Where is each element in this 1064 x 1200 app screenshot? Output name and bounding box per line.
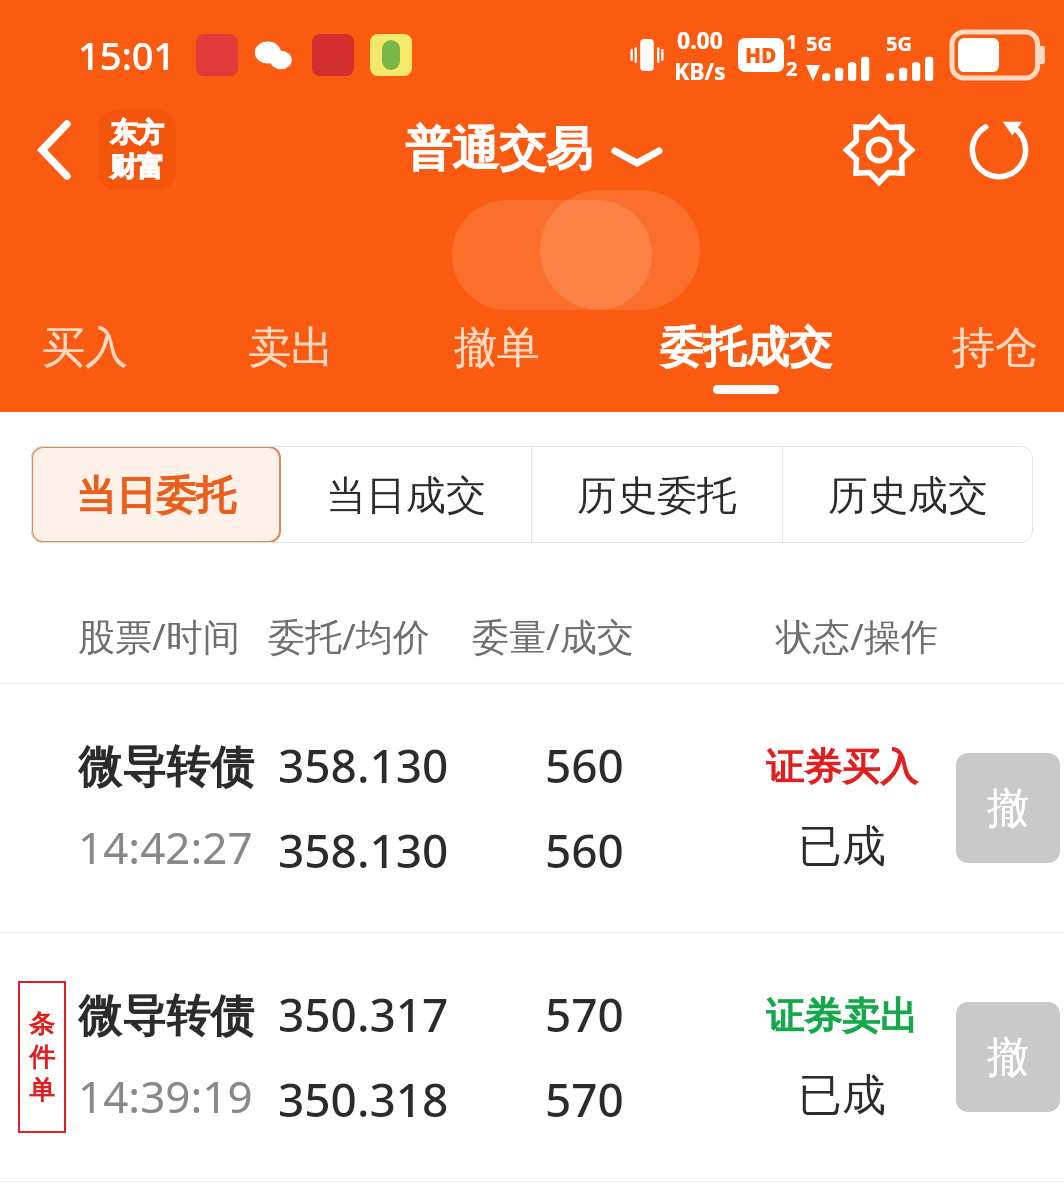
button[interactable]: 当日委托 [31,446,281,543]
staticText: 358.130 [278,819,449,882]
staticText: 已成 [798,819,886,874]
staticText: 卖出 [248,321,334,375]
button[interactable]: 历史成交 [783,446,1033,543]
button[interactable]: 历史委托 [532,446,782,543]
button[interactable]: 东方 [98,110,176,190]
button[interactable]: 持仓 [946,321,1044,394]
button[interactable]: 买入 [36,321,134,394]
staticText: 撤单 [454,321,540,375]
button[interactable]: 撤 [956,1002,1060,1112]
staticText: 微导转债 [78,989,254,1044]
staticText: 件 [29,1041,55,1074]
staticText: 条 [29,1008,55,1041]
staticText: 当日成交 [326,470,486,520]
staticText: 已成 [798,1068,886,1123]
staticText: 状态/操作 [776,610,938,661]
button[interactable]: 条 [0,933,1064,1181]
staticText: 2 [786,55,798,82]
staticText: 普通交易 [405,120,593,179]
button[interactable]: Settings [836,110,922,190]
staticText: 0.00 [677,24,723,55]
staticText: 570 [545,1068,624,1131]
staticText: 历史委托 [577,470,737,520]
staticText: 东方 [110,116,164,150]
staticText: 证券卖出 [766,992,918,1040]
staticText: 委托/均价 [268,610,430,661]
button[interactable]: 撤单 [448,321,546,394]
staticText: 微导转债 [78,740,254,795]
staticText: HD [745,41,777,70]
staticText: 财富 [110,150,164,184]
staticText: 350.317 [278,983,449,1046]
staticText: 14:39:19 [78,1066,253,1126]
button[interactable]: 当日成交 [281,446,531,543]
staticText: 买入 [42,321,128,375]
button[interactable]: 普通交易 [405,120,659,179]
staticText: 撤 [987,782,1029,835]
staticText: 单 [29,1074,55,1107]
staticText: 560 [545,819,624,882]
staticText: KB/s [674,55,726,86]
staticText: 570 [545,983,624,1046]
button[interactable]: Refresh [956,110,1042,190]
button[interactable]: 卖出 [242,321,340,394]
staticText: 560 [545,734,624,797]
staticText: 历史成交 [828,470,988,520]
button[interactable]: 微导转债 [0,684,1064,932]
staticText: 350.318 [278,1068,449,1131]
staticText: 持仓 [952,321,1038,375]
button[interactable]: Back [20,115,90,185]
staticText: 证券买入 [766,743,918,791]
staticText: 委量/成交 [472,610,634,661]
staticText: 股票/时间 [78,610,240,661]
staticText: 5G [886,30,912,57]
button[interactable]: 委托成交 [654,321,838,394]
staticText: 5G [806,30,832,57]
staticText: 15:01 [78,29,176,81]
staticText: 1 [786,28,798,55]
staticText: 14:42:27 [78,817,253,877]
staticText: 当日委托 [76,470,236,520]
staticText: 撤 [987,1031,1029,1084]
staticText: 358.130 [278,734,449,797]
staticText: 委托成交 [660,321,832,375]
button[interactable]: 撤 [956,753,1060,863]
